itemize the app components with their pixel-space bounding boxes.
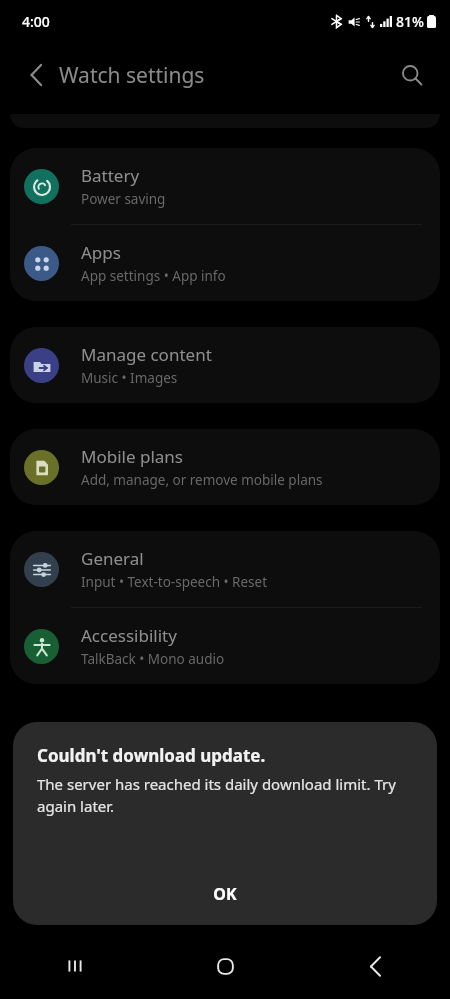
staticText: The server has reached its daily downloa…: [37, 774, 415, 817]
button[interactable]: Apps: [10, 225, 440, 301]
button[interactable]: Back: [16, 55, 56, 95]
button[interactable]: Mobile plans: [10, 429, 440, 505]
staticText: Add, manage, or remove mobile plans: [81, 471, 323, 489]
staticText: Manage content: [81, 343, 212, 366]
staticText: General: [81, 547, 144, 570]
staticText: OK: [213, 883, 237, 905]
staticText: Music • Images: [81, 369, 178, 387]
button[interactable]: Recents: [0, 933, 150, 999]
staticText: 4:00: [22, 12, 50, 31]
button[interactable]: Manage content: [10, 327, 440, 403]
staticText: Mobile plans: [81, 445, 183, 468]
staticText: Power saving: [81, 190, 166, 208]
staticText: Accessibility: [81, 624, 177, 647]
staticText: App settings • App info: [81, 267, 226, 285]
staticText: Watch settings: [59, 61, 205, 90]
button[interactable]: Battery: [10, 148, 440, 224]
staticText: TalkBack • Mono audio: [81, 650, 225, 668]
button[interactable]: Back: [300, 933, 450, 999]
button[interactable]: Accessibility: [10, 608, 440, 684]
button[interactable]: General: [10, 531, 440, 607]
staticText: Input • Text-to-speech • Reset: [81, 573, 268, 591]
staticText: Couldn't download update.: [37, 744, 266, 767]
staticText: Battery: [81, 164, 140, 187]
staticText: Apps: [81, 241, 121, 264]
button[interactable]: Search: [390, 53, 434, 97]
button[interactable]: OK: [179, 874, 271, 914]
button[interactable]: Home: [150, 933, 300, 999]
staticText: 81%: [396, 12, 424, 31]
